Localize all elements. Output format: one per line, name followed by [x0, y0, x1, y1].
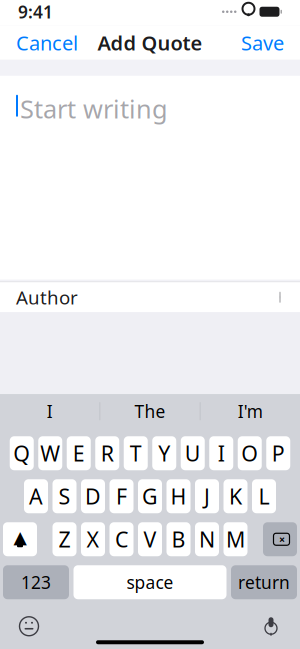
button[interactable]: M — [223, 522, 247, 556]
button[interactable]: J — [195, 479, 219, 513]
staticText: K — [229, 482, 242, 510]
button[interactable]: S — [52, 479, 76, 513]
button[interactable]: O — [238, 436, 262, 470]
staticText: 123 — [21, 571, 51, 594]
button[interactable]: P — [266, 436, 290, 470]
button[interactable]: Q — [10, 436, 34, 470]
staticText: X — [86, 525, 99, 553]
staticText: Q — [13, 439, 30, 467]
staticText: Save — [241, 29, 284, 56]
staticText: L — [258, 482, 269, 510]
button[interactable]: Save — [225, 21, 300, 64]
staticText: S — [58, 482, 70, 510]
staticText: Add Quote — [97, 29, 202, 56]
staticText: I — [218, 439, 225, 467]
button[interactable]: D — [81, 479, 105, 513]
staticText: D — [85, 482, 101, 510]
staticText: Z — [58, 525, 70, 553]
button[interactable]: The — [100, 394, 200, 428]
button[interactable]: R — [95, 436, 119, 470]
button[interactable]: Shift — [3, 522, 37, 556]
staticText: N — [199, 525, 215, 553]
staticText: V — [143, 525, 156, 553]
button[interactable]: W — [38, 436, 62, 470]
staticText: Cancel — [16, 29, 78, 56]
button[interactable]: K — [223, 479, 247, 513]
staticText: E — [73, 439, 85, 467]
staticText: B — [171, 525, 185, 553]
button[interactable]: E — [67, 436, 91, 470]
staticText: The — [134, 400, 165, 423]
button[interactable]: A — [24, 479, 48, 513]
button[interactable]: I — [209, 436, 233, 470]
button[interactable]: L — [252, 479, 276, 513]
staticText: G — [142, 482, 158, 510]
staticText: return — [238, 571, 290, 594]
staticText: I — [47, 400, 53, 423]
staticText: Start writing — [20, 92, 168, 125]
button[interactable]: 123 — [3, 565, 69, 599]
button[interactable]: return — [231, 565, 297, 599]
staticText: I'm — [238, 400, 263, 423]
staticText: H — [170, 482, 186, 510]
staticText: R — [101, 439, 114, 467]
staticText: P — [272, 439, 285, 467]
button[interactable]: I — [0, 394, 100, 428]
button[interactable]: I'm — [200, 394, 300, 428]
button[interactable]: Delete — [263, 522, 297, 556]
button[interactable]: V — [138, 522, 162, 556]
staticText: W — [40, 439, 60, 467]
button[interactable]: Z — [52, 522, 76, 556]
staticText: space — [126, 571, 173, 594]
staticText: O — [241, 439, 258, 467]
button[interactable]: N — [195, 522, 219, 556]
staticText: T — [130, 439, 142, 467]
button[interactable]: G — [138, 479, 162, 513]
staticText: J — [204, 482, 210, 510]
staticText: Y — [158, 439, 170, 467]
button[interactable]: C — [109, 522, 133, 556]
button[interactable]: T — [124, 436, 148, 470]
button[interactable]: H — [166, 479, 190, 513]
staticText: M — [226, 525, 245, 553]
button[interactable]: Cancel — [0, 21, 94, 64]
button[interactable]: B — [166, 522, 190, 556]
staticText: C — [115, 525, 128, 553]
staticText: ▲ — [13, 527, 26, 547]
staticText: U — [185, 439, 201, 467]
button[interactable]: U — [181, 436, 205, 470]
staticText: F — [116, 482, 127, 510]
button[interactable]: Dictation — [254, 609, 288, 643]
staticText: Author — [16, 285, 78, 310]
button[interactable]: space — [73, 565, 226, 599]
button[interactable]: Y — [152, 436, 176, 470]
button[interactable]: X — [81, 522, 105, 556]
staticText: A — [29, 482, 43, 510]
button[interactable]: Author — [0, 282, 300, 312]
staticText: × — [279, 532, 285, 546]
button[interactable]: Emoji — [12, 609, 46, 643]
button[interactable]: F — [109, 479, 133, 513]
staticText: 9:41 — [18, 0, 53, 23]
